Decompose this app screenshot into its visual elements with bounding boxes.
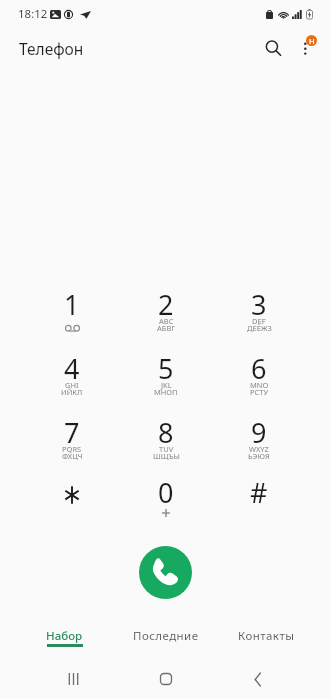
staticText: АБВГ — [157, 323, 176, 333]
staticText: 18:12 — [18, 6, 48, 22]
staticText: # — [250, 474, 268, 511]
staticText: H — [309, 36, 315, 46]
button[interactable]: Контакты — [216, 628, 317, 662]
button[interactable]: Recents — [53, 659, 93, 699]
staticText: ЬЭЮЯ — [248, 451, 270, 461]
button[interactable]: 2 — [135, 283, 197, 341]
button[interactable]: 0 — [135, 471, 197, 529]
button[interactable]: 9 — [228, 411, 290, 469]
staticText: 4 — [64, 350, 80, 387]
staticText: PQRS — [62, 444, 82, 454]
staticText: РСТУ — [250, 387, 269, 397]
staticText: 6 — [251, 350, 267, 387]
staticText: 0 — [158, 474, 174, 511]
staticText: ФХЦЧ — [62, 451, 83, 461]
staticText: 2 — [158, 286, 174, 323]
button[interactable]: 3 — [228, 283, 290, 341]
staticText: 9 — [251, 414, 267, 451]
button[interactable] — [41, 471, 103, 529]
button[interactable]: 7 — [41, 411, 103, 469]
staticText: TUV — [159, 444, 174, 454]
staticText: ABC — [159, 316, 174, 326]
staticText: MNO — [250, 380, 269, 390]
staticText: МНОП — [154, 387, 178, 397]
staticText: DEF — [252, 316, 266, 326]
button[interactable]: 6 — [228, 347, 290, 405]
button[interactable]: More options — [293, 28, 321, 56]
staticText: ДЕЁЖЗ — [247, 323, 272, 333]
button[interactable]: 5 — [135, 347, 197, 405]
staticText: ШЩЪЫ — [153, 451, 180, 461]
staticText: Контакты — [238, 628, 295, 644]
button[interactable]: Последние — [115, 628, 216, 662]
staticText: ИЙКЛ — [61, 387, 83, 397]
staticText: 5 — [158, 350, 174, 387]
staticText: GHI — [65, 380, 79, 390]
button[interactable]: 4 — [41, 347, 103, 405]
staticText: JKL — [161, 380, 172, 390]
staticText: Телефон — [19, 38, 84, 59]
button[interactable]: Call — [139, 546, 192, 599]
staticText: Набор — [46, 628, 83, 644]
button[interactable]: 1 — [41, 283, 103, 341]
staticText: Последние — [133, 628, 199, 644]
button[interactable]: Набор — [14, 628, 115, 662]
staticText: 7 — [64, 414, 80, 451]
staticText: WXYZ — [249, 444, 269, 454]
staticText: 8 — [158, 414, 174, 451]
button[interactable]: Back — [238, 659, 278, 699]
button[interactable]: Search — [257, 32, 289, 64]
staticText: 3 — [251, 286, 267, 323]
staticText: 1 — [64, 286, 80, 323]
button[interactable]: Home — [146, 659, 186, 699]
button[interactable]: # — [228, 471, 290, 529]
button[interactable]: 8 — [135, 411, 197, 469]
